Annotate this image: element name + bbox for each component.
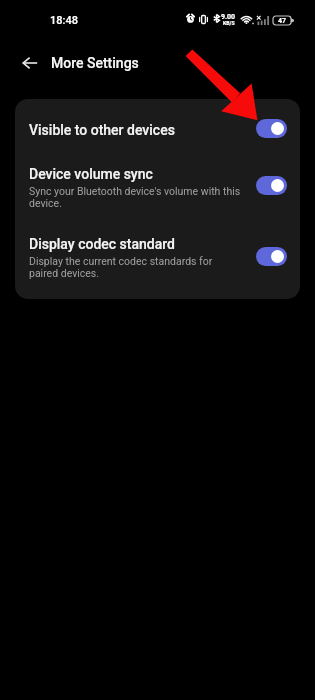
staticText: 47	[278, 17, 287, 25]
button[interactable]: Toggle	[256, 176, 287, 195]
button[interactable]: Device volume sync	[15, 145, 300, 213]
staticText: More Settings	[51, 55, 139, 71]
staticText: Device volume sync	[29, 166, 153, 182]
staticText: 18:48	[50, 14, 78, 27]
staticText: Display the current codec standards for …	[29, 255, 243, 279]
button[interactable]: Toggle	[256, 119, 287, 138]
button[interactable]: Visible to other devices	[15, 99, 300, 145]
staticText: Sync your Bluetooth device's volume with…	[29, 185, 243, 209]
button[interactable]: Toggle	[256, 247, 287, 266]
staticText: 9.00	[221, 13, 236, 21]
button[interactable]: Display codec standard	[15, 213, 300, 299]
staticText: Visible to other devices	[29, 122, 175, 138]
staticText: Display codec standard	[29, 236, 175, 252]
staticText: KB/S	[223, 20, 235, 26]
button[interactable]: Back	[0, 40, 45, 88]
